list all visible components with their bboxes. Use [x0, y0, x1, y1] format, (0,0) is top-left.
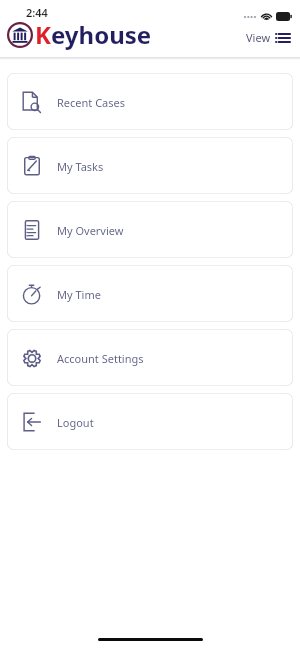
button[interactable]: My Overview	[7, 201, 293, 258]
staticText: My Tasks	[57, 159, 104, 174]
staticText: My Overview	[57, 223, 124, 238]
button[interactable]: My Time	[7, 265, 293, 322]
button[interactable]: Account Settings	[7, 329, 293, 386]
staticText: 2:44	[26, 5, 48, 20]
staticText: K	[35, 18, 51, 51]
staticText: Recent Cases	[57, 95, 126, 110]
staticText: Logout	[57, 415, 94, 430]
staticText: eyhouse	[51, 18, 152, 51]
button[interactable]: View menu	[244, 28, 292, 47]
button[interactable]: My Tasks	[7, 137, 293, 194]
staticText: Account Settings	[57, 351, 144, 366]
button[interactable]: Logout	[7, 393, 293, 450]
button[interactable]: Recent Cases	[7, 73, 293, 130]
staticText: My Time	[57, 287, 101, 302]
staticText: View	[246, 30, 271, 45]
